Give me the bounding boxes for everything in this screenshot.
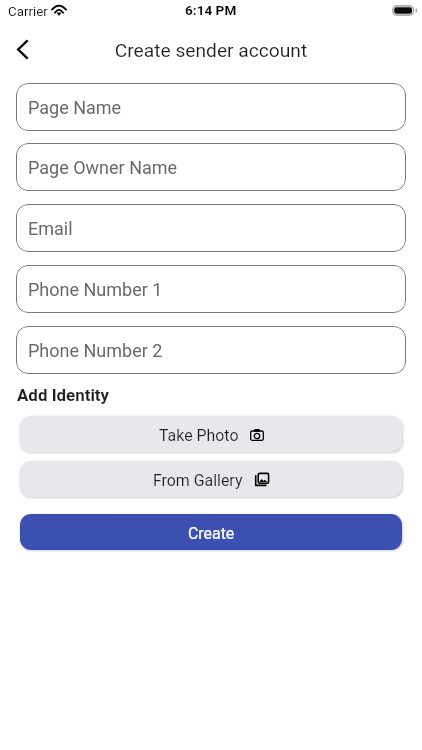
button[interactable]: Take Photo <box>20 416 402 452</box>
staticText: 6:14 PM <box>185 2 237 18</box>
staticText: From Gallery <box>153 471 243 490</box>
staticText: Phone Number 2 <box>28 340 163 361</box>
staticText: Email <box>28 218 73 239</box>
button[interactable]: Back <box>0 27 45 71</box>
staticText: Page Owner Name <box>28 157 178 178</box>
staticText: Page Name <box>28 97 122 118</box>
button[interactable]: Page Name <box>16 83 406 131</box>
staticText: Phone Number 1 <box>28 279 163 300</box>
button[interactable]: Create <box>20 514 402 550</box>
button[interactable]: Page Owner Name <box>16 143 406 191</box>
staticText: Create sender account <box>0 39 422 62</box>
staticText: Take Photo <box>159 426 239 445</box>
button[interactable]: Phone Number 2 <box>16 326 406 374</box>
button[interactable]: Phone Number 1 <box>16 265 406 313</box>
button[interactable]: Email <box>16 204 406 252</box>
staticText: Carrier <box>8 4 48 20</box>
staticText: Add Identity <box>17 385 110 405</box>
staticText: Create <box>188 524 235 543</box>
button[interactable]: From Gallery <box>20 461 402 497</box>
